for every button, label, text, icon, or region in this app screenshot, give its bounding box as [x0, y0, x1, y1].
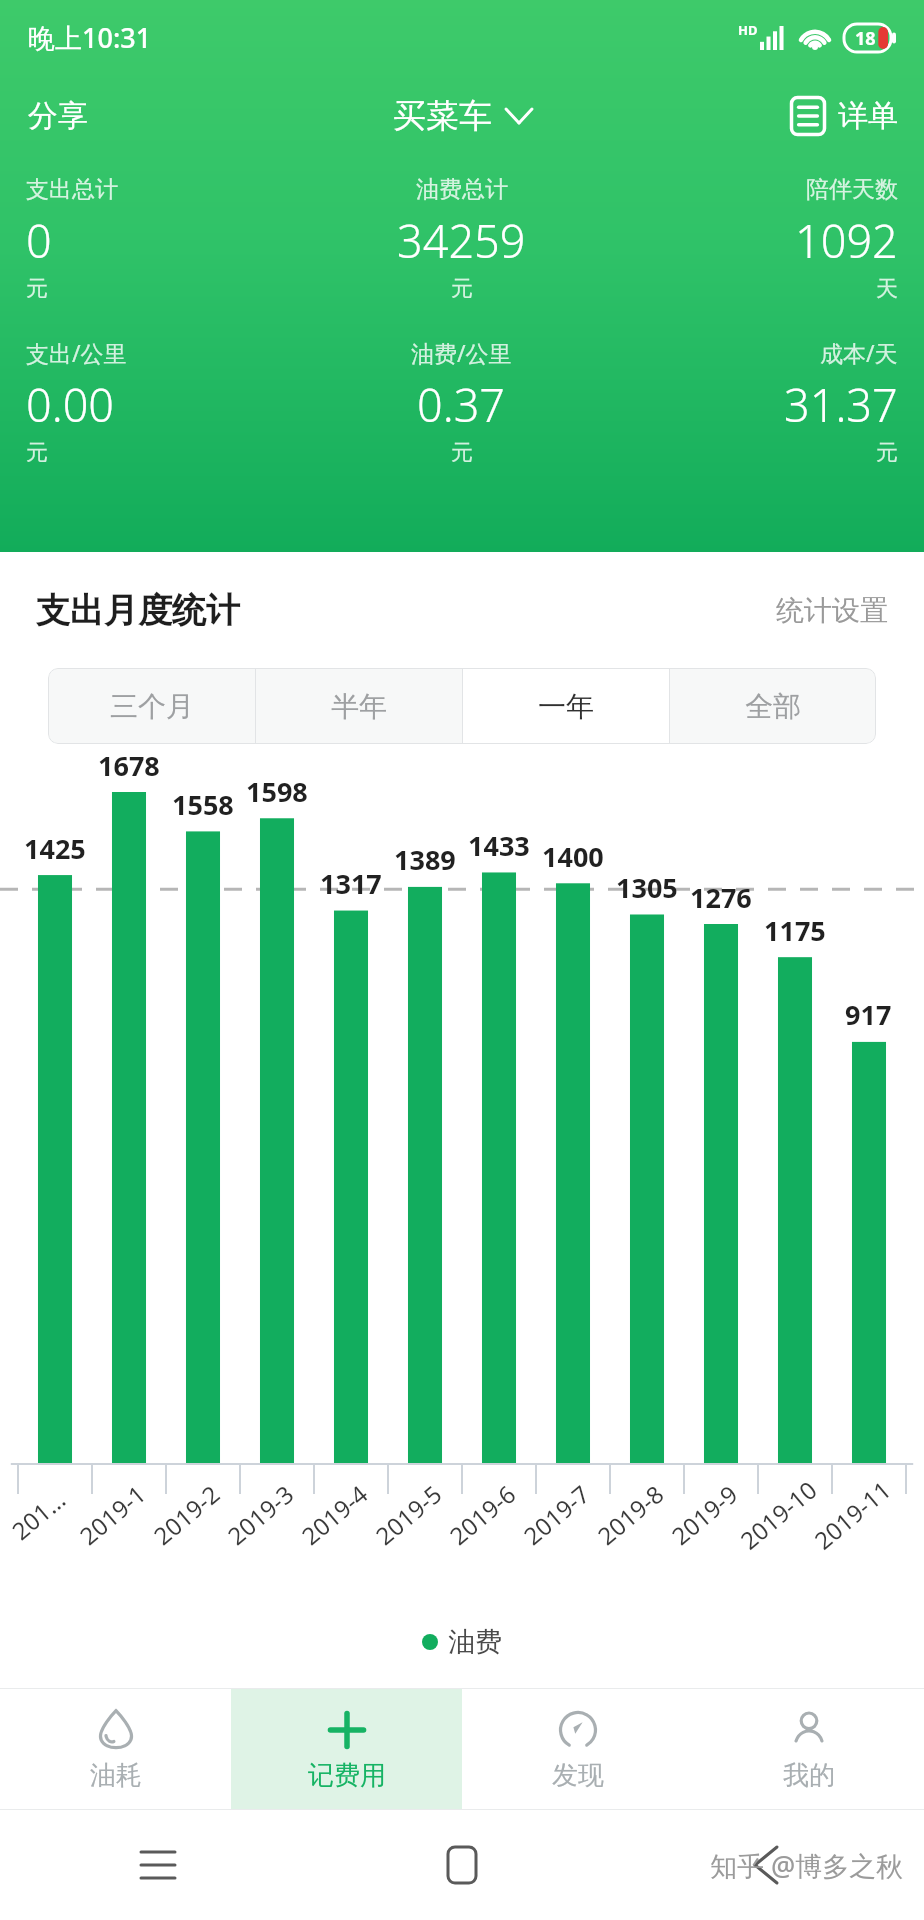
staticText: 2019-2	[146, 1477, 227, 1552]
staticText: 1389	[394, 841, 456, 878]
staticText: 1678	[98, 747, 160, 784]
staticText: 1433	[468, 827, 530, 864]
staticText: 1598	[246, 773, 308, 810]
staticText: 我的	[783, 1759, 835, 1792]
button[interactable]: Back	[728, 1827, 804, 1903]
staticText: 油费/公里	[411, 337, 512, 368]
staticText: 2019-5	[368, 1477, 449, 1552]
staticText: 支出/公里	[26, 337, 127, 368]
staticText: 1317	[320, 865, 382, 902]
staticText: 发现	[552, 1759, 604, 1792]
staticText: 2019-3	[220, 1477, 301, 1552]
staticText: 2019-1	[72, 1477, 153, 1552]
button[interactable]: 全部	[670, 668, 876, 744]
staticText: 1276	[690, 879, 752, 916]
staticText: 1305	[616, 869, 678, 906]
staticText: 0	[26, 210, 52, 271]
staticText: 917	[845, 996, 892, 1033]
staticText: 2019-9	[664, 1477, 745, 1552]
staticText: 元	[26, 275, 48, 303]
staticText: 201…	[4, 1482, 72, 1547]
button[interactable]: 三个月	[48, 668, 255, 744]
staticText: 全部	[745, 689, 801, 724]
staticText: 油耗	[90, 1759, 142, 1792]
staticText: 买菜车	[393, 95, 492, 137]
staticText: 元	[451, 275, 473, 303]
staticText: 1558	[172, 786, 234, 823]
button[interactable]: 买菜车	[381, 87, 544, 145]
staticText: 油费总计	[416, 175, 508, 204]
staticText: 2019-4	[294, 1477, 375, 1552]
staticText: 元	[26, 439, 48, 467]
button[interactable]: 半年	[256, 668, 462, 744]
staticText: 支出月度统计	[36, 589, 240, 632]
staticText: 1400	[542, 838, 604, 875]
staticText: HD	[738, 21, 758, 39]
staticText: 31.37	[784, 374, 898, 435]
staticText: 知乎 @博多之秋	[710, 1847, 904, 1884]
button[interactable]: Home	[424, 1827, 500, 1903]
button[interactable]: 统计设置	[762, 583, 902, 638]
staticText: 半年	[331, 689, 387, 724]
button[interactable]: 记费用	[231, 1689, 462, 1809]
staticText: 2019-10	[733, 1473, 824, 1556]
staticText: 1175	[764, 912, 826, 949]
staticText: 分享	[28, 97, 88, 135]
staticText: 一年	[538, 689, 594, 724]
staticText: 油费	[448, 1625, 502, 1659]
button[interactable]: 分享	[14, 87, 102, 145]
staticText: 三个月	[110, 689, 194, 724]
staticText: 记费用	[308, 1759, 386, 1792]
button[interactable]: 详单	[778, 88, 910, 144]
staticText: 18	[855, 26, 876, 51]
staticText: 元	[451, 439, 473, 467]
button[interactable]: 一年	[463, 668, 669, 744]
button[interactable]: 我的	[693, 1689, 924, 1809]
button[interactable]: 发现	[462, 1689, 693, 1809]
staticText: 天	[876, 275, 898, 303]
staticText: 2019-6	[442, 1477, 523, 1552]
staticText: 0.37	[417, 374, 506, 435]
staticText: 2019-8	[590, 1477, 671, 1552]
staticText: 支出总计	[26, 175, 118, 204]
button[interactable]: 油耗	[0, 1689, 231, 1809]
staticText: 0.00	[26, 374, 115, 435]
staticText: 1425	[24, 830, 86, 867]
staticText: 统计设置	[776, 593, 888, 628]
staticText: 元	[876, 439, 898, 467]
staticText: 陪伴天数	[806, 175, 898, 204]
button[interactable]: Recent apps	[120, 1827, 196, 1903]
staticText: 详单	[838, 97, 898, 135]
staticText: 1092	[795, 210, 898, 271]
staticText: 34259	[397, 210, 526, 271]
staticText: 2019-7	[516, 1477, 597, 1552]
staticText: 晚上10:31	[28, 19, 152, 56]
staticText: 成本/天	[820, 337, 898, 368]
staticText: 2019-11	[807, 1473, 898, 1556]
